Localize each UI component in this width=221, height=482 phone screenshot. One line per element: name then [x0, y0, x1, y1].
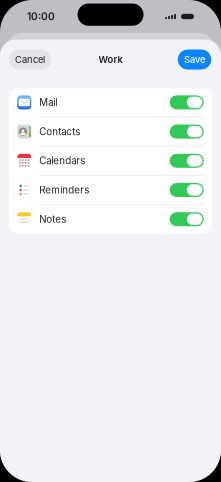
staticText: Reminders	[39, 184, 89, 196]
staticText: Contacts	[39, 126, 80, 137]
staticText: Work	[98, 54, 122, 65]
button[interactable]: Contacts	[9, 117, 212, 147]
staticText: Save	[184, 54, 205, 65]
button[interactable]: Reminders	[9, 176, 212, 205]
staticText: Cancel	[15, 54, 45, 65]
button[interactable]: Notes	[9, 205, 212, 233]
staticText: Notes	[39, 213, 66, 225]
button[interactable]: Calendars	[9, 147, 212, 176]
staticText: 10:00	[27, 10, 55, 23]
button[interactable]: Mail	[9, 88, 212, 117]
button[interactable]: Save	[178, 49, 211, 69]
staticText: Mail	[39, 96, 57, 108]
button[interactable]: Cancel	[9, 49, 51, 69]
staticText: Calendars	[39, 155, 85, 167]
